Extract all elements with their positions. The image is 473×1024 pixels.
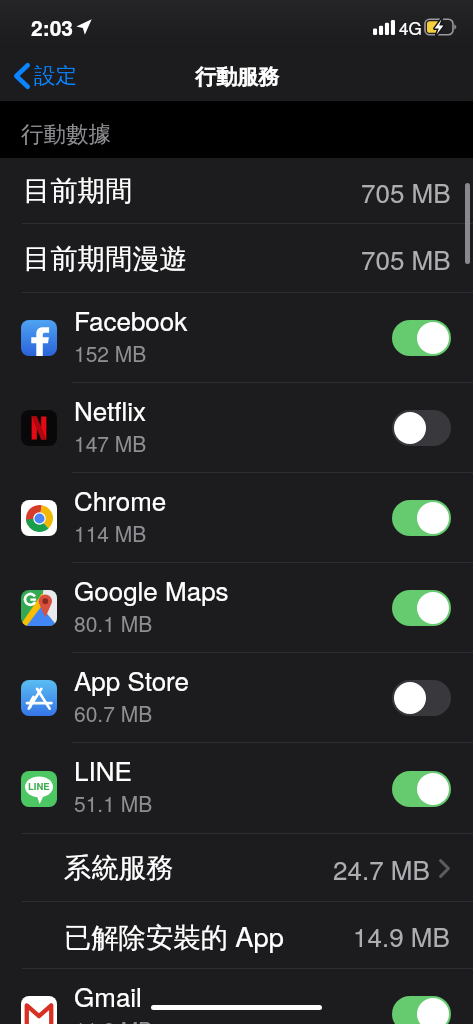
staticText: 行動服務 [195,64,279,90]
button[interactable]: Cellular data on [392,320,451,356]
button[interactable]: App Store [0,653,473,743]
staticText: 152 MB [74,338,147,368]
staticText: 目前期間漫遊 [23,242,187,276]
staticText: 設定 [34,62,77,89]
button[interactable]: Gmail [0,969,473,1024]
button[interactable]: 目前期間 [0,158,473,224]
staticText: 705 MB [361,240,451,277]
button[interactable]: Cellular data on [392,500,451,536]
staticText: 行動數據 [21,120,111,148]
button[interactable]: Netflix [0,383,473,473]
staticText: 14.9 MB [353,917,450,954]
staticText: 24.7 MB [333,850,430,887]
staticText: 705 MB [361,173,451,210]
staticText: Google Maps [74,571,229,608]
staticText: 51.1 MB [74,788,153,818]
staticText: Chrome [74,481,167,518]
staticText: LINE [74,751,132,788]
staticText: 60.7 MB [74,698,153,728]
staticText: 80.1 MB [74,608,153,638]
staticText: 11.9 MB [74,1014,153,1024]
button[interactable]: Cellular data off [392,680,451,716]
staticText: 4G [399,15,422,39]
button[interactable]: LINE [0,743,473,834]
staticText: 系統服務 [64,851,174,885]
staticText: 2:03 [31,12,74,42]
staticText: LINE [28,779,50,793]
staticText: App Store [74,661,189,698]
staticText: Facebook [74,301,188,338]
button[interactable]: Cellular data on [392,771,451,807]
button[interactable]: 已解除安裝的 App [0,902,473,969]
button[interactable]: Google Maps [0,563,473,653]
button[interactable]: Cellular data on [392,590,451,626]
button[interactable]: 設定 [8,57,83,94]
staticText: 目前期間 [23,174,133,208]
button[interactable]: 目前期間漫遊 [0,224,473,293]
staticText: 147 MB [74,428,147,458]
staticText: Netflix [74,391,146,428]
staticText: Gmail [74,977,142,1014]
button[interactable]: 系統服務 [0,834,473,902]
button[interactable]: Facebook [0,293,473,383]
button[interactable]: Chrome [0,473,473,563]
button[interactable]: Cellular data on [392,996,451,1024]
staticText: 已解除安裝的 App [64,916,284,955]
staticText: 114 MB [74,518,147,548]
button[interactable]: Cellular data off [392,410,451,446]
